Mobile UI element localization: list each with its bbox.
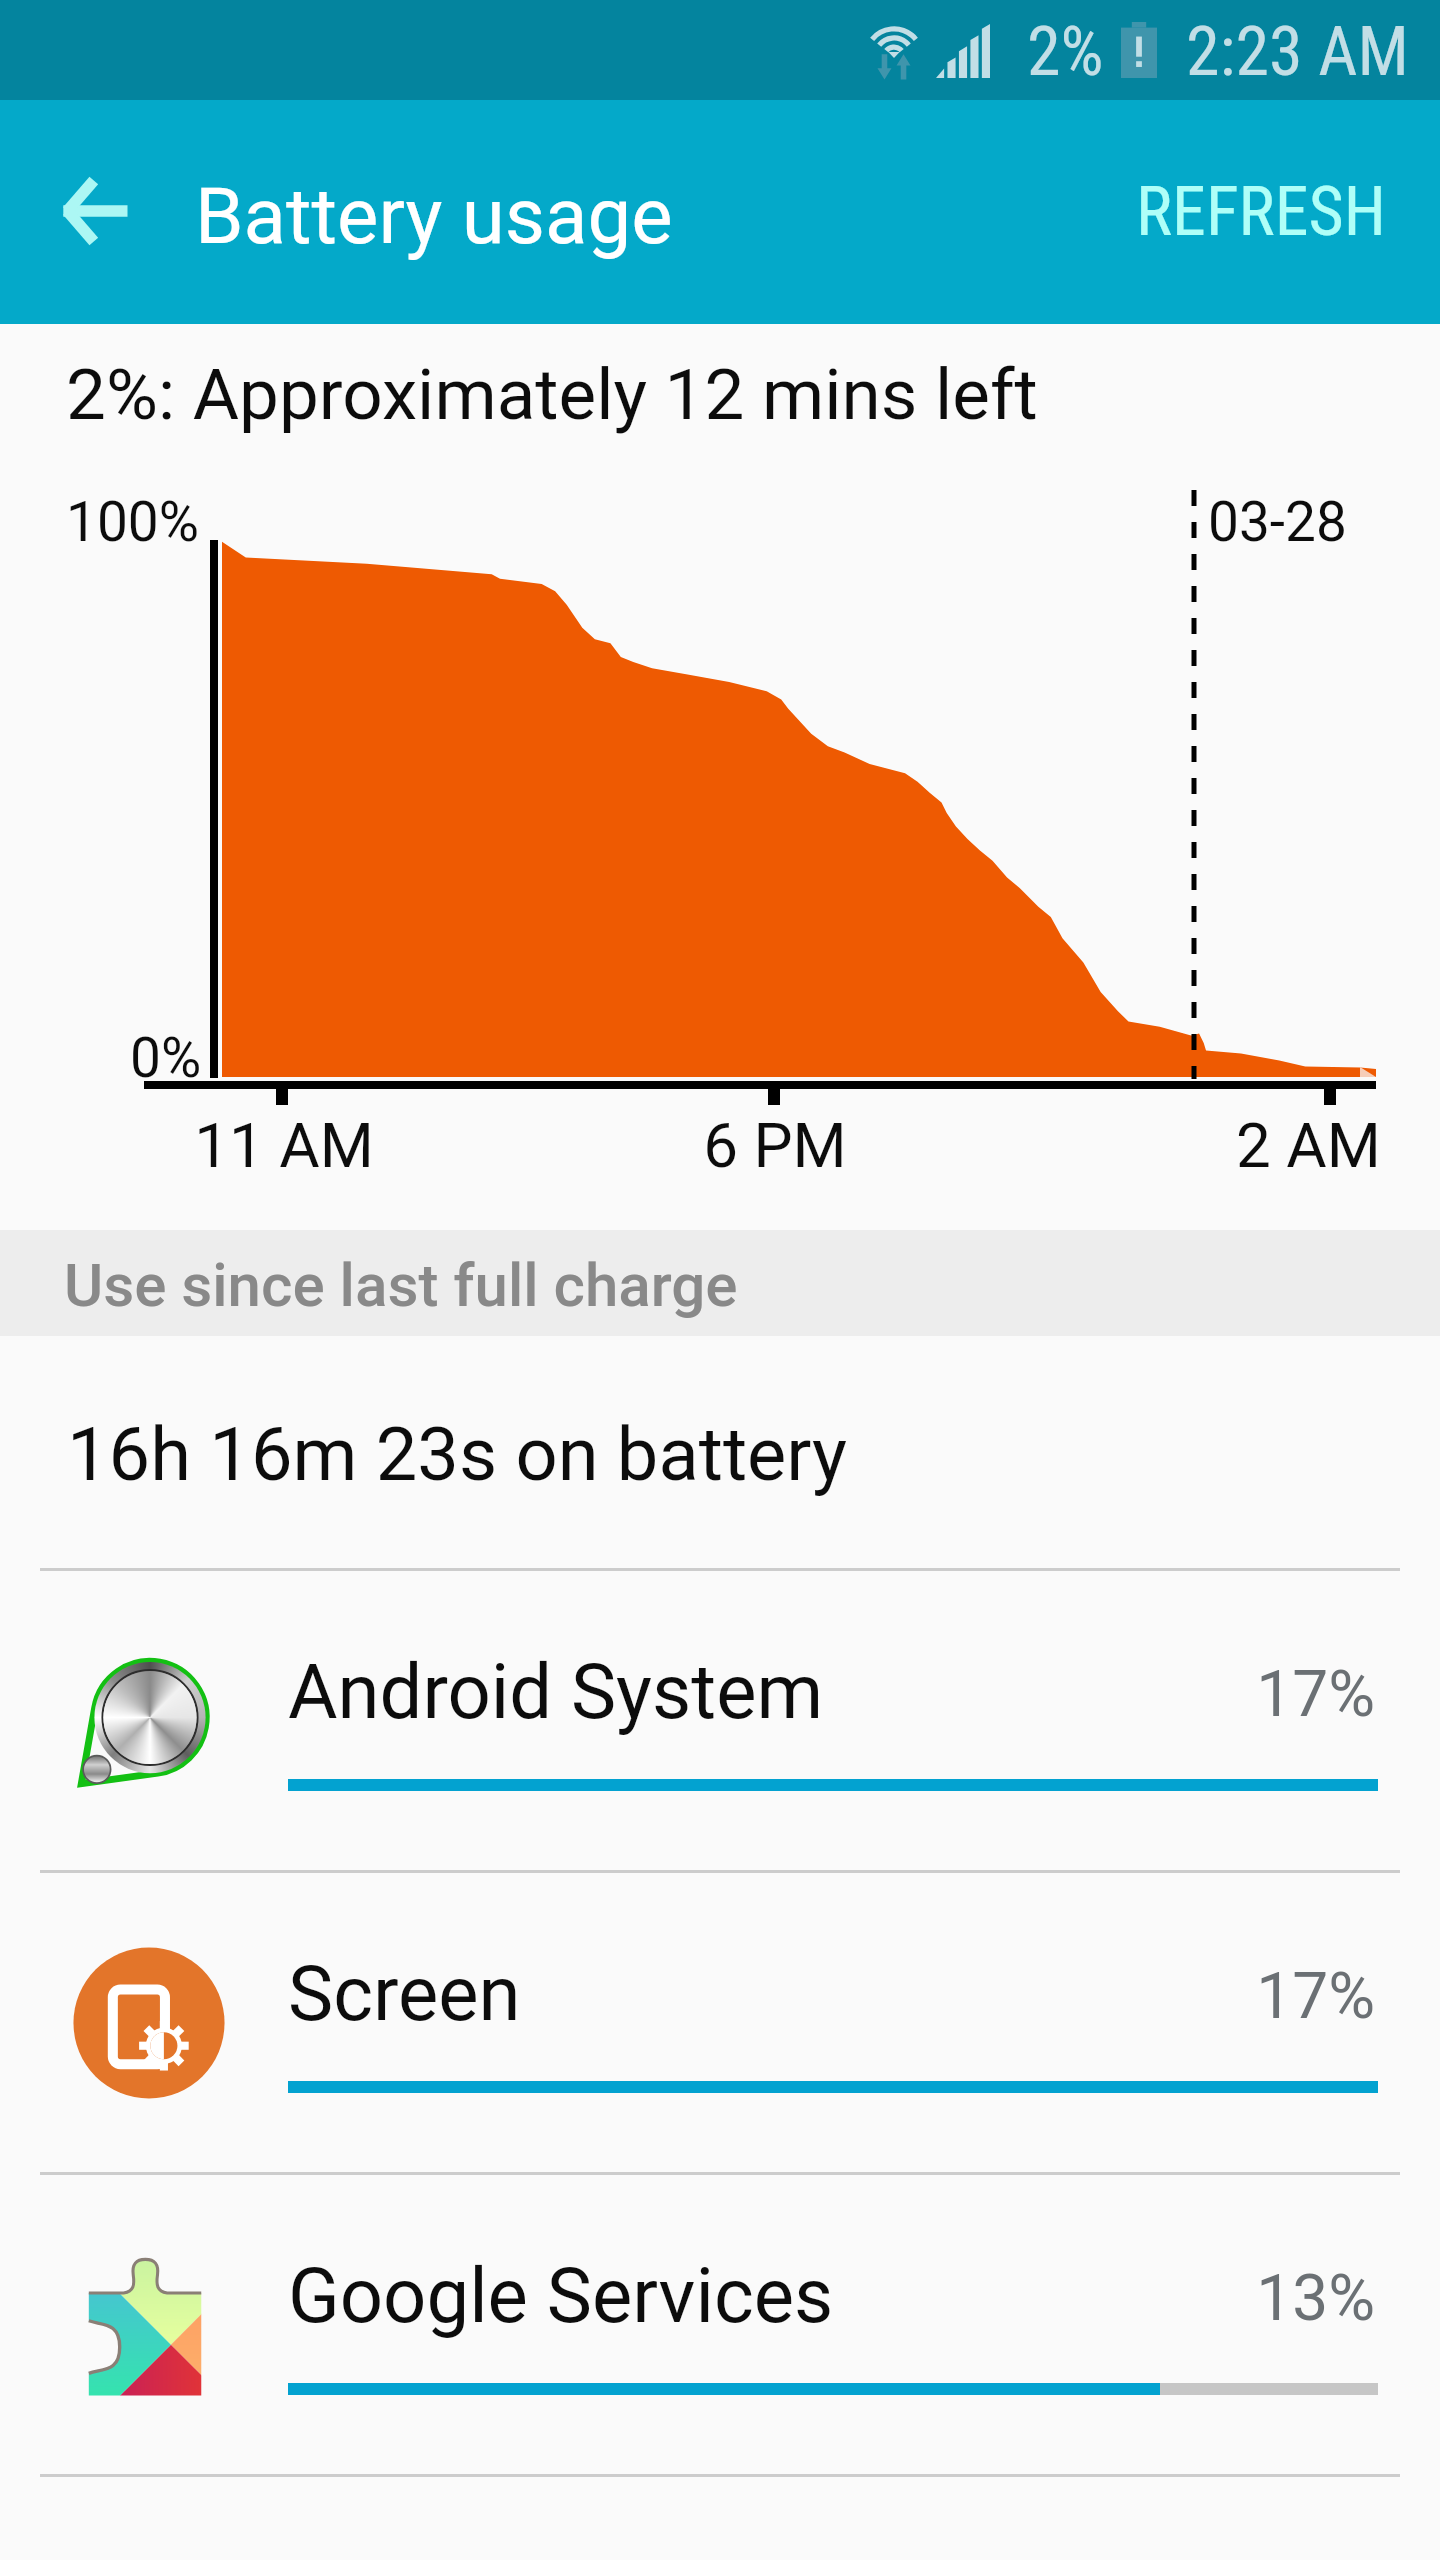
staticText: 03-28 xyxy=(1208,490,1347,554)
staticText: 2% xyxy=(1027,12,1104,92)
staticText: 100% xyxy=(66,490,200,554)
staticText: 0% xyxy=(130,1026,202,1090)
staticText: 17% xyxy=(1129,1657,1375,1732)
staticText: 2:23 AM xyxy=(1186,12,1409,92)
staticText: Screen xyxy=(288,1949,521,2038)
staticText: Android System xyxy=(288,1647,824,1736)
staticText: 16h 16m 23s on battery xyxy=(67,1411,848,1498)
staticText: 13% xyxy=(1129,2261,1375,2336)
staticText: 17% xyxy=(1129,1959,1375,2034)
staticText: 11 AM xyxy=(194,1109,374,1182)
button[interactable]: Navigate up xyxy=(16,132,174,290)
staticText: REFRESH xyxy=(1136,172,1386,252)
button[interactable]: Screen xyxy=(0,1873,1440,2172)
staticText: 6 PM xyxy=(703,1109,847,1182)
staticText: Google Services xyxy=(288,2251,834,2340)
staticText: Use since last full charge xyxy=(64,1250,738,1320)
staticText: 2 AM xyxy=(1236,1109,1381,1182)
button[interactable]: Android System xyxy=(0,1571,1440,1870)
button[interactable]: REFRESH xyxy=(1103,135,1423,289)
button[interactable]: Google Services xyxy=(0,2175,1440,2474)
staticText: Battery usage xyxy=(195,171,673,262)
staticText: 2%: Approximately 12 mins left xyxy=(66,353,1038,436)
